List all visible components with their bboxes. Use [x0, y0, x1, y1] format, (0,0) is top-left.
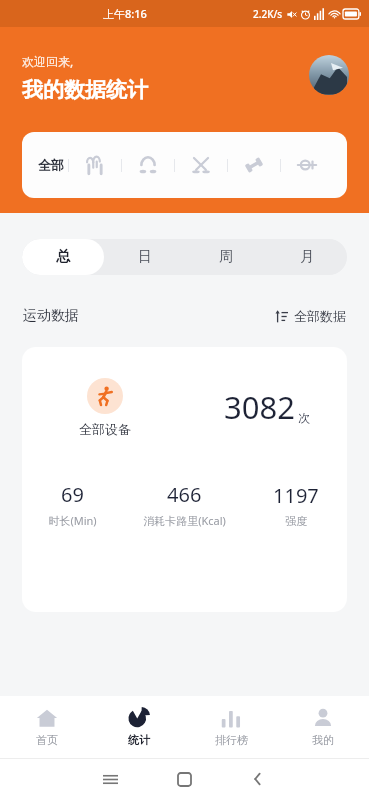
button[interactable]: Home [147, 758, 221, 800]
staticText: 统计 [128, 733, 150, 747]
staticText: 运动数据 [23, 307, 79, 325]
staticText: 时长(Min) [48, 513, 97, 528]
staticText: 排行榜 [215, 733, 248, 747]
button[interactable]: 日 [104, 239, 185, 275]
button[interactable]: Profile avatar [309, 55, 349, 95]
button[interactable]: Back [221, 758, 295, 800]
button[interactable]: 我的 [277, 696, 369, 758]
staticText: 日 [138, 248, 152, 266]
staticText: 月 [300, 248, 314, 266]
button[interactable]: 首页 [0, 696, 93, 758]
staticText: 全部设备 [79, 421, 131, 437]
staticText: 1197 [273, 482, 319, 509]
staticText: 全部 [38, 157, 64, 173]
staticText: 3082 [224, 386, 295, 428]
staticText: 2.2K/s [253, 7, 283, 21]
button[interactable]: Filter plate [283, 132, 331, 198]
staticText: 我的 [312, 733, 334, 747]
button[interactable]: Filter rope [71, 132, 119, 198]
button[interactable]: 排行榜 [185, 696, 277, 758]
staticText: 69 [61, 481, 84, 508]
staticText: 我的数据统计 [22, 77, 148, 103]
button[interactable]: Filter ski [177, 132, 225, 198]
staticText: 总 [56, 248, 70, 266]
button[interactable]: 全部 [38, 157, 66, 173]
staticText: 消耗卡路里(Kcal) [143, 513, 226, 528]
staticText: 466 [167, 481, 202, 508]
staticText: 强度 [285, 514, 307, 528]
button[interactable]: 月 [266, 239, 347, 275]
staticText: 欢迎回来, [22, 53, 74, 69]
button[interactable]: 全部设备 [22, 347, 347, 612]
button[interactable]: 总 [22, 239, 104, 275]
button[interactable]: 统计 [93, 696, 185, 758]
staticText: 首页 [36, 733, 58, 747]
button[interactable]: 周 [185, 239, 266, 275]
button[interactable]: Filter situp [124, 132, 172, 198]
button[interactable]: Filter dumbbell [230, 132, 278, 198]
button[interactable]: 全部数据 [275, 308, 346, 324]
staticText: 全部数据 [294, 308, 346, 324]
button[interactable]: Recents [73, 758, 147, 800]
staticText: 上午8:16 [103, 6, 147, 21]
staticText: 次 [298, 410, 310, 425]
staticText: 周 [219, 248, 233, 266]
